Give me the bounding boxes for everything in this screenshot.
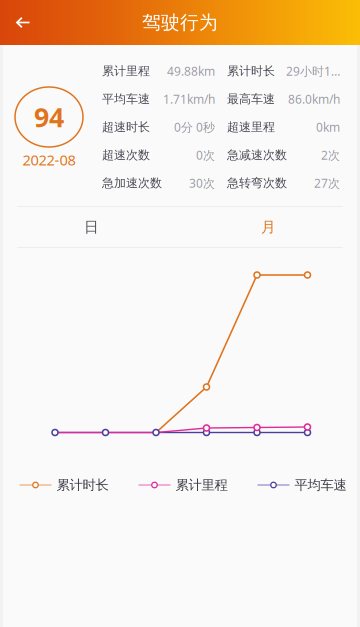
- staticText: 0次: [196, 147, 215, 163]
- staticText: 日: [84, 218, 99, 236]
- staticText: 94: [34, 99, 64, 135]
- staticText: 2022-08: [22, 150, 75, 169]
- staticText: 累计里程: [102, 64, 150, 78]
- staticText: 86.0km/h: [288, 91, 340, 107]
- staticText: 驾驶行为: [142, 11, 218, 34]
- staticText: 超速里程: [227, 120, 275, 134]
- staticText: 27次: [314, 175, 340, 191]
- staticText: 29小时1…: [286, 63, 340, 79]
- staticText: 1.71km/h: [163, 91, 215, 107]
- button[interactable]: Back: [0, 0, 46, 45]
- staticText: 49.88km: [167, 63, 215, 79]
- staticText: 0km: [316, 119, 340, 135]
- staticText: 累计时长: [56, 477, 108, 493]
- button[interactable]: 月: [180, 207, 357, 247]
- staticText: 超速次数: [102, 148, 150, 162]
- staticText: 累计时长: [227, 64, 275, 78]
- button[interactable]: 日: [3, 207, 180, 247]
- staticText: 月: [261, 218, 276, 236]
- staticText: 30次: [189, 175, 215, 191]
- staticText: 0分 0秒: [174, 119, 215, 135]
- staticText: 2次: [321, 147, 340, 163]
- staticText: 平均车速: [102, 92, 150, 106]
- staticText: 急转弯次数: [227, 176, 287, 190]
- staticText: 平均车速: [294, 477, 346, 493]
- staticText: 急加速次数: [102, 176, 162, 190]
- staticText: 超速时长: [102, 120, 150, 134]
- staticText: 急减速次数: [227, 148, 287, 162]
- staticText: 最高车速: [227, 92, 275, 106]
- staticText: 累计里程: [175, 477, 227, 493]
